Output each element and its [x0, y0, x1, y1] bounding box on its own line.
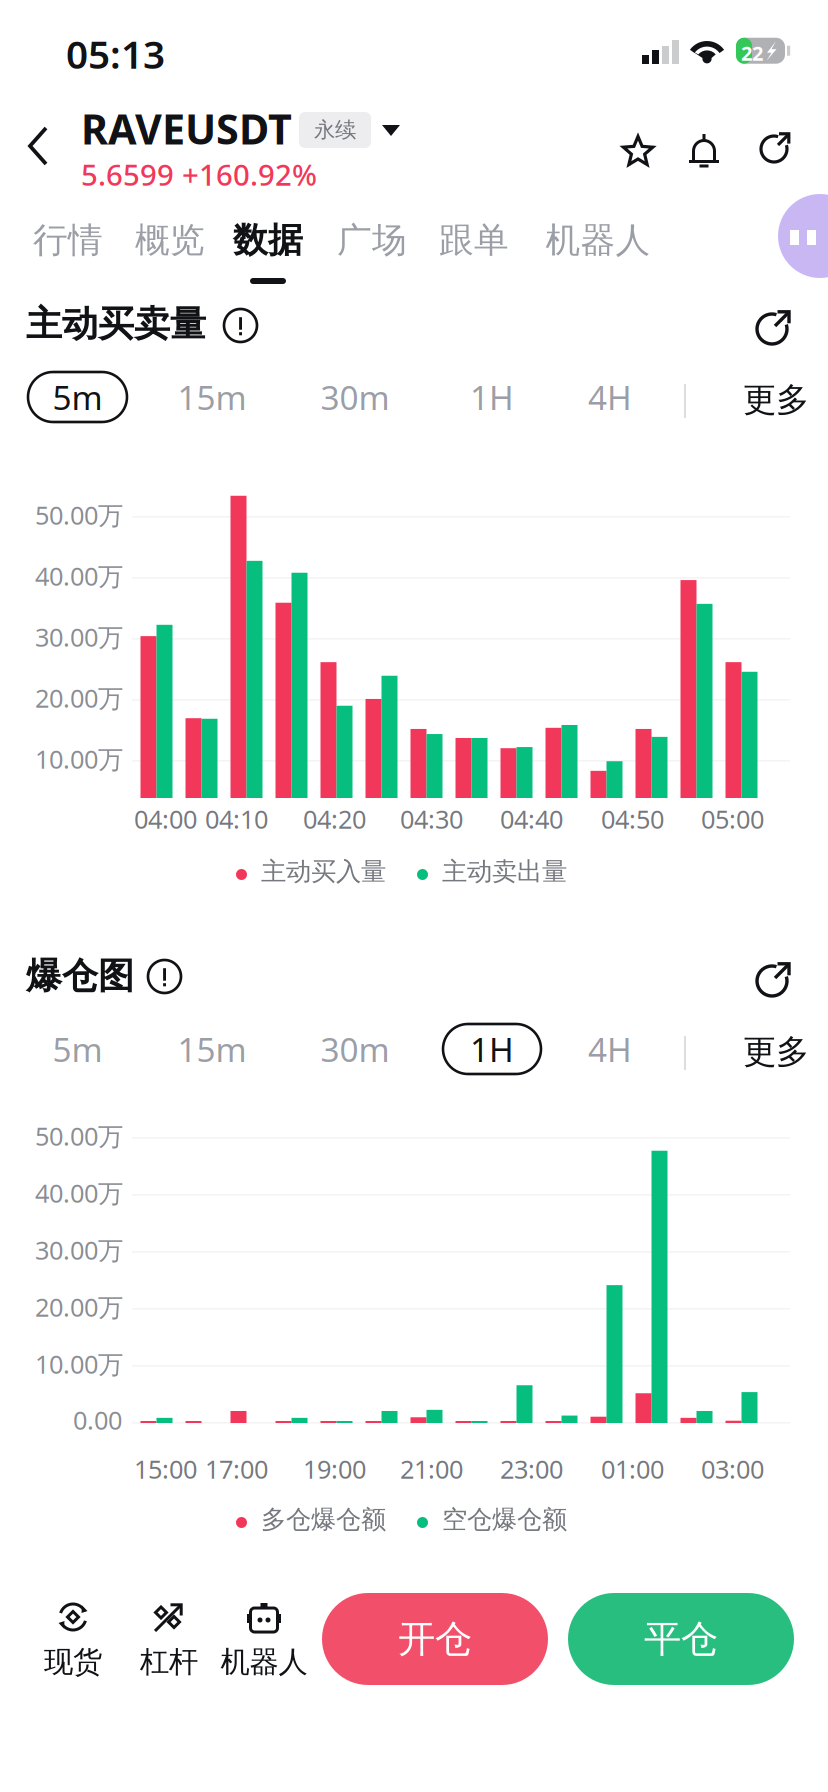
staticText: 更多 — [743, 1031, 809, 1072]
button[interactable]: 更多 — [733, 1024, 819, 1080]
button[interactable]: Favorite — [614, 127, 662, 177]
staticText: 机器人 — [545, 219, 650, 262]
staticText: 更多 — [743, 379, 809, 420]
button[interactable]: 5m — [28, 1024, 127, 1074]
staticText: 5.6599 +160.92% — [81, 155, 317, 194]
button[interactable]: 更多 — [733, 372, 819, 428]
staticText: 5m — [52, 1027, 102, 1071]
staticText: 概览 — [135, 219, 205, 262]
staticText: 1H — [470, 1027, 514, 1071]
staticText: 主动买卖量 — [26, 302, 206, 346]
staticText: 行情 — [33, 219, 103, 262]
button[interactable]: 机器人 — [542, 219, 654, 297]
button[interactable]: Alerts — [680, 124, 728, 174]
staticText: 4H — [588, 1027, 632, 1071]
staticText: 05:00 — [701, 802, 764, 836]
staticText: 永续 — [314, 117, 356, 143]
button[interactable]: Expand chart — [752, 950, 800, 1000]
staticText: 主动卖出量 — [442, 856, 567, 887]
staticText: 15m — [177, 375, 246, 419]
staticText: 03:00 — [701, 1452, 764, 1486]
button[interactable]: 30m — [300, 372, 410, 422]
staticText: 20.00万 — [35, 1290, 123, 1324]
staticText: 01:00 — [601, 1452, 664, 1486]
button[interactable]: 30m — [300, 1024, 410, 1074]
button[interactable]: 广场 — [332, 219, 412, 297]
staticText: RAVEUSDT — [81, 101, 292, 156]
button[interactable]: 现货 — [21, 1596, 125, 1694]
button[interactable]: 跟单 — [434, 219, 514, 297]
button[interactable]: 1H — [443, 1024, 541, 1074]
button[interactable]: 行情 — [28, 219, 108, 297]
staticText: 平仓 — [644, 1616, 718, 1662]
staticText: 4H — [588, 375, 632, 419]
button[interactable]: 杠杆 — [117, 1596, 221, 1694]
button[interactable]: 15m — [157, 1024, 267, 1074]
staticText: 广场 — [337, 219, 407, 262]
staticText: 04:30 — [400, 802, 463, 836]
staticText: 50.00万 — [35, 498, 123, 532]
staticText: 杠杆 — [140, 1644, 198, 1680]
staticText: 机器人 — [220, 1644, 307, 1680]
staticText: 05:13 — [66, 28, 165, 79]
staticText: 10.00万 — [35, 1347, 123, 1381]
staticText: 21:00 — [400, 1452, 463, 1486]
staticText: 17:00 — [205, 1452, 268, 1486]
button[interactable]: 4H — [561, 372, 659, 422]
staticText: 多仓爆仓额 — [261, 1504, 386, 1535]
staticText: 30.00万 — [35, 620, 123, 654]
button[interactable]: 4H — [561, 1024, 659, 1074]
staticText: 15m — [177, 1027, 246, 1071]
staticText: 数据 — [233, 219, 303, 262]
button[interactable]: 15m — [157, 372, 267, 422]
staticText: 30.00万 — [35, 1233, 123, 1267]
staticText: 04:50 — [601, 802, 664, 836]
staticText: 50.00万 — [35, 1119, 123, 1153]
button[interactable]: 平仓 — [568, 1593, 794, 1685]
button[interactable]: 机器人 — [212, 1596, 316, 1694]
staticText: 22 — [741, 40, 763, 66]
button[interactable]: 1H — [443, 372, 541, 422]
staticText: 04:10 — [205, 802, 268, 836]
staticText: 30m — [320, 375, 389, 419]
staticText: 跟单 — [439, 219, 509, 262]
staticText: 5m — [52, 375, 102, 419]
staticText: 04:20 — [303, 802, 366, 836]
button[interactable]: Share — [754, 116, 802, 166]
staticText: 0.00 — [73, 1403, 122, 1437]
staticText: 1H — [470, 375, 514, 419]
staticText: 15:00 — [134, 1452, 197, 1486]
staticText: 空仓爆仓额 — [442, 1504, 567, 1535]
staticText: 40.00万 — [35, 1176, 123, 1210]
button[interactable]: 数据 — [228, 219, 308, 297]
staticText: 20.00万 — [35, 681, 123, 715]
button[interactable]: Expand chart — [752, 298, 800, 348]
staticText: 40.00万 — [35, 559, 123, 593]
staticText: 开仓 — [398, 1616, 472, 1662]
staticText: 23:00 — [500, 1452, 563, 1486]
staticText: 30m — [320, 1027, 389, 1071]
button[interactable]: 开仓 — [322, 1593, 548, 1685]
staticText: 04:40 — [500, 802, 563, 836]
staticText: 爆仓图 — [26, 954, 134, 998]
staticText: 10.00万 — [35, 742, 123, 776]
button[interactable]: 5m — [28, 372, 127, 422]
staticText: 现货 — [44, 1644, 102, 1680]
staticText: 19:00 — [303, 1452, 366, 1486]
button[interactable]: 概览 — [130, 219, 210, 297]
button[interactable]: Back — [18, 118, 76, 176]
staticText: 主动买入量 — [261, 856, 386, 887]
staticText: 04:00 — [134, 802, 197, 836]
